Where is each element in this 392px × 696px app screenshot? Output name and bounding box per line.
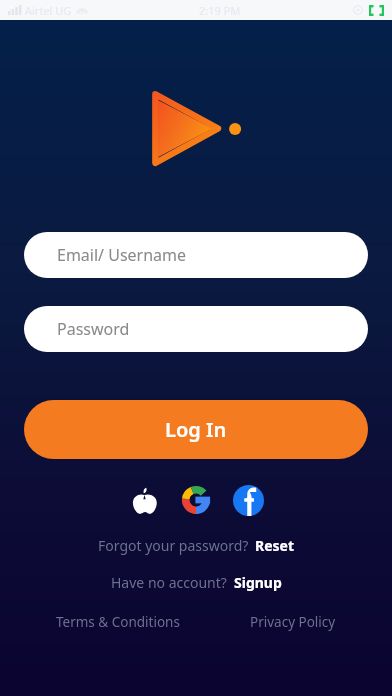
button[interactable]: Sign in with Facebook [226, 478, 270, 522]
button[interactable]: Sign in with Apple [122, 478, 166, 522]
button[interactable]: Log In [24, 400, 368, 459]
button[interactable]: Privacy Policy [250, 613, 336, 631]
staticText: Forgot your password? [98, 536, 249, 555]
staticText: Signup [234, 573, 282, 592]
staticText: Reset [255, 536, 295, 555]
button[interactable]: Email/ Username [24, 232, 368, 278]
button[interactable]: Reset [255, 536, 295, 555]
staticText: Password [57, 318, 130, 340]
staticText: Privacy Policy [250, 613, 336, 631]
staticText: Have no account? [111, 573, 227, 592]
staticText: Terms & Conditions [56, 613, 180, 631]
staticText: 2:19 PM [199, 3, 241, 18]
staticText: Email/ Username [57, 244, 187, 266]
button[interactable]: Terms & Conditions [56, 613, 180, 631]
staticText: Airtel UG [25, 3, 72, 18]
button[interactable]: Password [24, 306, 368, 352]
button[interactable]: Signup [234, 573, 282, 592]
button[interactable]: Sign in with Google [174, 478, 218, 522]
staticText: Log In [165, 416, 227, 443]
